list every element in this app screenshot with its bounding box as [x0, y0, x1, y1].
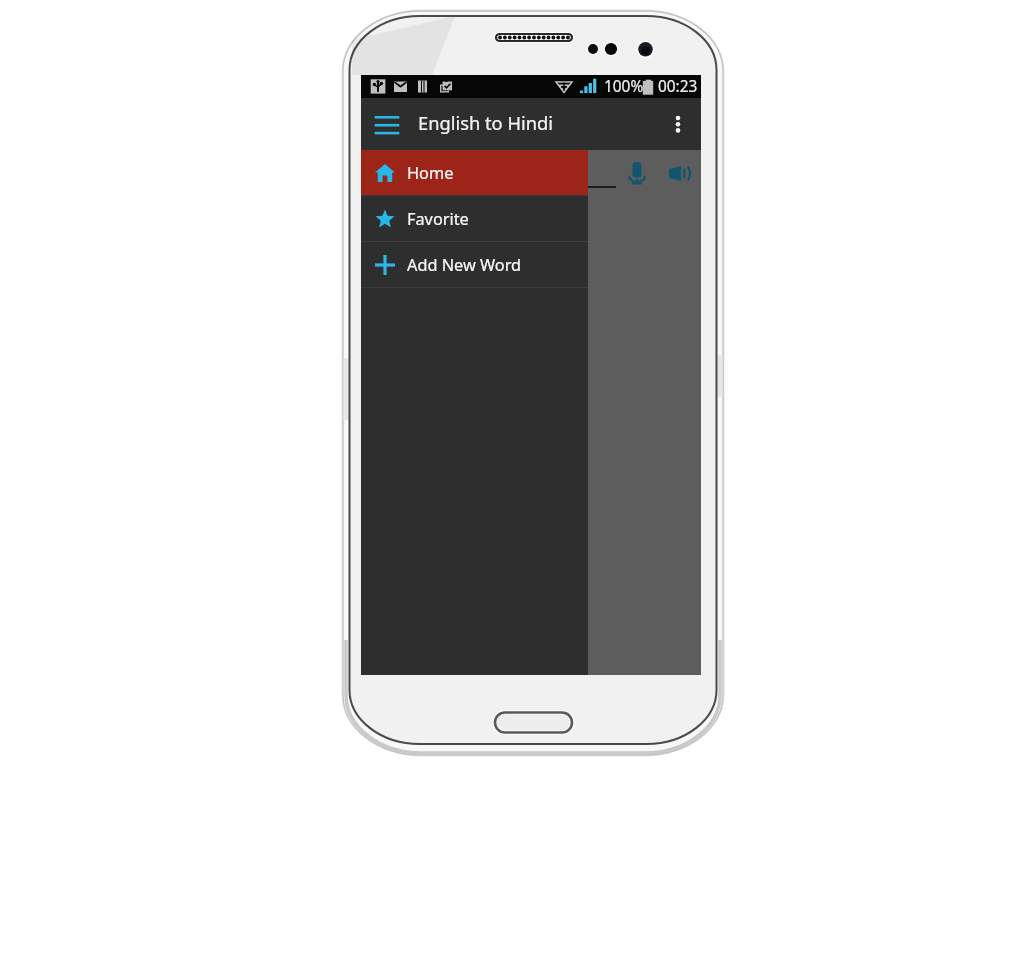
staticText: Home	[407, 162, 454, 184]
staticText: Favorite	[407, 208, 469, 230]
staticText: 00:23	[658, 76, 698, 97]
button[interactable]: Home button	[491, 708, 576, 737]
button[interactable]: Open navigation drawer	[374, 111, 400, 137]
staticText: English to Hindi	[418, 110, 553, 135]
button[interactable]: Home	[361, 150, 588, 195]
staticText: Add New Word	[407, 254, 522, 276]
button[interactable]: Add New Word	[361, 242, 588, 287]
button[interactable]: Favorite	[361, 196, 588, 241]
button[interactable]: More options	[666, 109, 690, 139]
button[interactable]: Speak	[664, 157, 695, 189]
button[interactable]: Voice input	[621, 155, 652, 192]
staticText: 100%	[604, 76, 644, 97]
